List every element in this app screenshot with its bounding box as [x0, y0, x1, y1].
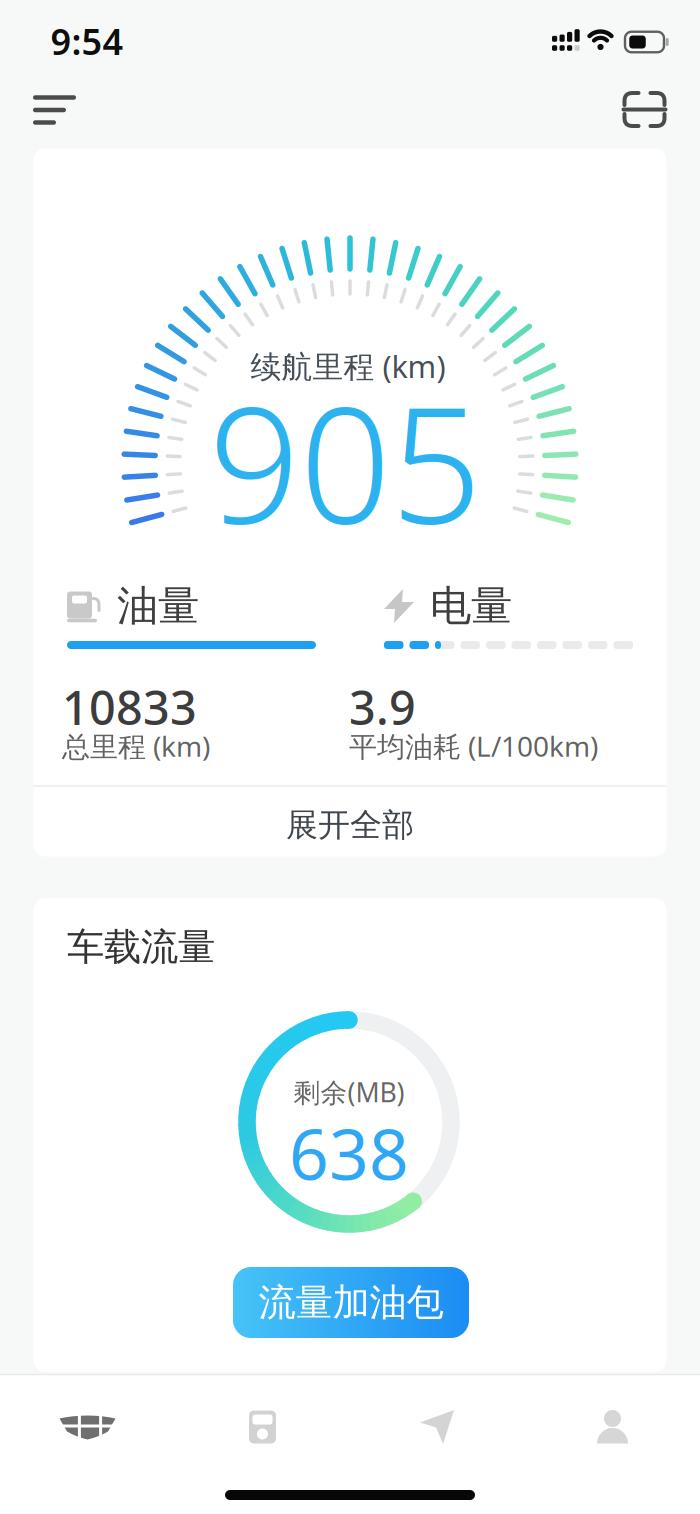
staticText: 续航里程 (km) — [250, 346, 445, 386]
staticText: 3.9 — [349, 676, 416, 738]
staticText: 流量加油包 — [258, 1280, 443, 1325]
button[interactable] — [525, 1377, 700, 1477]
staticText: 展开全部 — [286, 805, 414, 845]
button[interactable] — [0, 1377, 175, 1477]
staticText: 10833 — [62, 676, 197, 738]
button[interactable] — [33, 95, 76, 125]
staticText: 9:54 — [50, 17, 123, 65]
button[interactable] — [621, 90, 667, 129]
staticText: 电量 — [430, 581, 512, 631]
staticText: 车载流量 — [67, 924, 215, 970]
staticText: 平均油耗 (L/100km) — [349, 727, 598, 765]
staticText: 638 — [289, 1107, 409, 1199]
button[interactable]: 展开全部 — [33, 790, 666, 860]
staticText: 剩余(MB) — [293, 1074, 404, 1110]
button[interactable] — [175, 1377, 350, 1477]
staticText: 总里程 (km) — [62, 727, 210, 765]
staticText: 905 — [208, 355, 481, 567]
button[interactable] — [350, 1377, 525, 1477]
staticText: 油量 — [117, 581, 199, 631]
button[interactable]: 流量加油包 — [233, 1267, 469, 1338]
